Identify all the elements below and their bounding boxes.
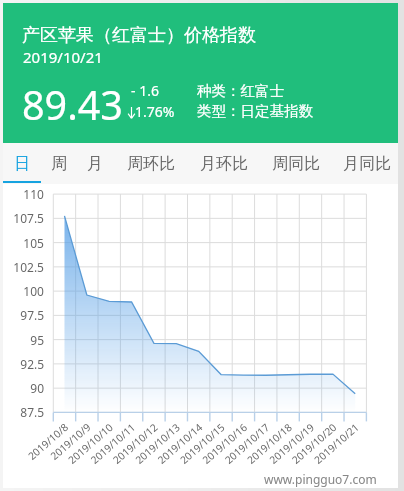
staticText: 2019/10/21	[23, 47, 103, 67]
staticText: 周	[51, 154, 67, 174]
staticText: 产区苹果（红富士）价格指数	[22, 24, 256, 47]
button[interactable]: 周	[45, 143, 73, 184]
button[interactable]: 月	[81, 143, 109, 184]
staticText: 月环比	[200, 154, 248, 174]
staticText: 月同比	[343, 154, 391, 174]
staticText: 89.43	[22, 78, 123, 132]
staticText: 日	[14, 154, 30, 174]
button[interactable]: 日	[8, 143, 36, 184]
staticText: 周环比	[127, 154, 175, 174]
staticText: 月	[87, 154, 103, 174]
staticText: 类型：日定基指数	[197, 102, 313, 120]
button[interactable]: 月环比	[193, 143, 255, 184]
staticText: - 1.6	[131, 81, 159, 100]
staticText: 种类：红富士	[197, 82, 284, 100]
staticText: 周同比	[272, 154, 320, 174]
staticText: 1.76%	[135, 102, 175, 121]
button[interactable]: 周环比	[120, 143, 182, 184]
button[interactable]: 月同比	[336, 143, 398, 184]
button[interactable]: 周同比	[265, 143, 327, 184]
